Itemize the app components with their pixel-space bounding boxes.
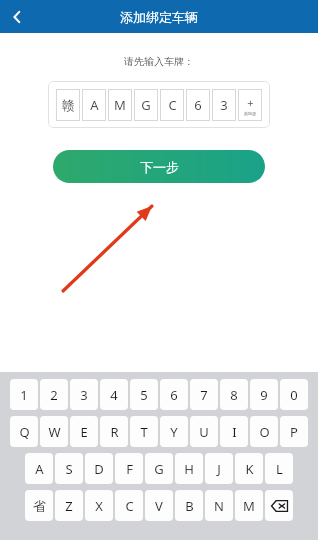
button[interactable]: Back <box>0 0 33 33</box>
button[interactable]: H <box>175 453 203 484</box>
staticText: R <box>110 423 119 441</box>
button[interactable]: 1 <box>10 379 38 410</box>
staticText: M <box>243 497 255 515</box>
staticText: S <box>65 460 73 478</box>
button[interactable]: 6 <box>160 379 188 410</box>
staticText: Z <box>65 497 73 515</box>
button[interactable]: A <box>25 453 53 484</box>
button[interactable]: U <box>190 416 218 447</box>
button[interactable]: S <box>55 453 83 484</box>
staticText: A <box>90 96 99 114</box>
staticText: M <box>114 96 126 114</box>
button[interactable]: 4 <box>100 379 128 410</box>
button[interactable]: 5 <box>130 379 158 410</box>
button[interactable]: I <box>220 416 248 447</box>
staticText: 8 <box>230 386 238 404</box>
button[interactable]: X <box>85 490 113 521</box>
button[interactable]: L <box>265 453 293 484</box>
staticText: G <box>154 460 164 478</box>
button[interactable]: Backspace <box>265 490 293 521</box>
button[interactable]: 7 <box>190 379 218 410</box>
staticText: N <box>214 497 224 515</box>
staticText: C <box>125 497 134 515</box>
staticText: 7 <box>200 386 208 404</box>
staticText: O <box>259 423 270 441</box>
button[interactable]: P <box>280 416 308 447</box>
staticText: B <box>185 497 194 515</box>
staticText: 6 <box>194 96 202 114</box>
staticText: 添加绑定车辆 <box>120 9 198 25</box>
button[interactable]: 8 <box>220 379 248 410</box>
button[interactable]: G <box>145 453 173 484</box>
staticText: 赣 <box>62 97 75 113</box>
staticText: L <box>276 460 283 478</box>
staticText: 1 <box>20 386 28 404</box>
button[interactable]: D <box>85 453 113 484</box>
button[interactable]: M <box>108 89 132 121</box>
button[interactable]: 省 <box>25 490 53 521</box>
button[interactable]: F <box>115 453 143 484</box>
staticText: F <box>126 460 133 478</box>
staticText: 5 <box>140 386 148 404</box>
button[interactable]: N <box>205 490 233 521</box>
staticText: 下一步 <box>140 159 179 175</box>
staticText: Y <box>170 423 178 441</box>
staticText: 新能源 <box>244 111 256 116</box>
staticText: P <box>290 423 298 441</box>
staticText: 4 <box>110 386 118 404</box>
staticText: V <box>155 497 163 515</box>
staticText: C <box>168 96 177 114</box>
button[interactable]: J <box>205 453 233 484</box>
button[interactable]: 新能源 <box>238 89 262 121</box>
button[interactable]: 2 <box>40 379 68 410</box>
button[interactable]: 3 <box>70 379 98 410</box>
button[interactable]: 6 <box>186 89 210 121</box>
staticText: 9 <box>260 386 268 404</box>
staticText: G <box>141 96 151 114</box>
staticText: U <box>199 423 209 441</box>
staticText: D <box>94 460 104 478</box>
button[interactable]: O <box>250 416 278 447</box>
button[interactable]: E <box>70 416 98 447</box>
button[interactable]: 下一步 <box>53 150 265 183</box>
button[interactable]: C <box>160 89 184 121</box>
staticText: K <box>245 460 254 478</box>
button[interactable]: Z <box>55 490 83 521</box>
staticText: H <box>184 460 194 478</box>
button[interactable]: K <box>235 453 263 484</box>
button[interactable]: M <box>235 490 263 521</box>
staticText: 请先输入车牌： <box>0 55 318 68</box>
staticText: J <box>217 460 221 478</box>
staticText: 3 <box>220 96 228 114</box>
button[interactable]: B <box>175 490 203 521</box>
button[interactable]: C <box>115 490 143 521</box>
staticText: T <box>140 423 148 441</box>
button[interactable]: T <box>130 416 158 447</box>
staticText: Q <box>19 423 30 441</box>
button[interactable]: 9 <box>250 379 278 410</box>
button[interactable]: W <box>40 416 68 447</box>
staticText: I <box>232 423 237 441</box>
staticText: 2 <box>50 386 58 404</box>
staticText: X <box>95 497 103 515</box>
button[interactable]: G <box>134 89 158 121</box>
button[interactable]: Q <box>10 416 38 447</box>
staticText: 0 <box>290 386 298 404</box>
staticText: W <box>48 423 61 441</box>
button[interactable]: A <box>82 89 106 121</box>
button[interactable]: 3 <box>212 89 236 121</box>
staticText: + <box>247 95 254 110</box>
staticText: 3 <box>80 386 88 404</box>
staticText: 省 <box>33 498 46 514</box>
staticText: E <box>80 423 88 441</box>
button[interactable]: 0 <box>280 379 308 410</box>
staticText: 6 <box>170 386 178 404</box>
staticText: A <box>35 460 44 478</box>
button[interactable]: V <box>145 490 173 521</box>
button[interactable]: 赣 <box>56 89 80 121</box>
button[interactable]: R <box>100 416 128 447</box>
button[interactable]: Y <box>160 416 188 447</box>
